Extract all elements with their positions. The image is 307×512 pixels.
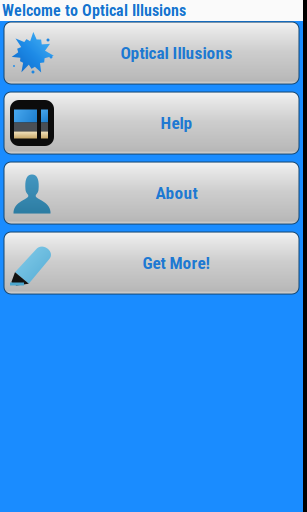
button[interactable]: About bbox=[4, 162, 299, 224]
button[interactable]: Help bbox=[4, 92, 299, 154]
staticText: Welcome to Optical Illusions bbox=[2, 1, 186, 20]
staticText: Help bbox=[160, 113, 192, 133]
button[interactable]: Optical Illusions bbox=[4, 22, 299, 84]
staticText: Get More! bbox=[142, 253, 210, 273]
staticText: Optical Illusions bbox=[120, 43, 232, 63]
button[interactable]: Get More! bbox=[4, 232, 299, 294]
staticText: About bbox=[155, 183, 197, 203]
